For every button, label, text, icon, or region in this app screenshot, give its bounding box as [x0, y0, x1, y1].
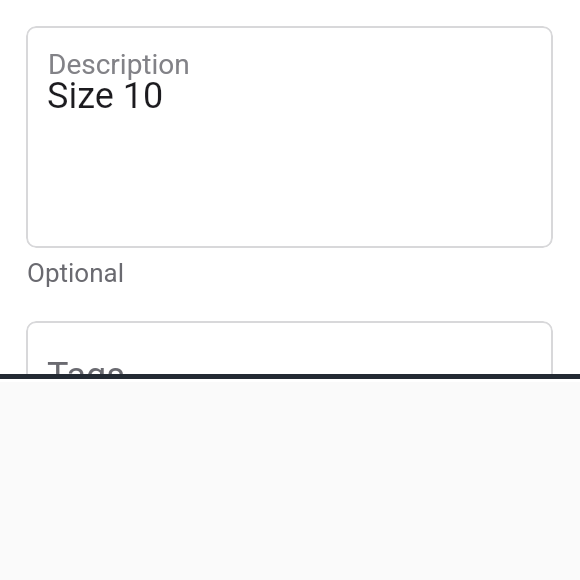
staticText: Optional: [27, 258, 124, 288]
staticText: Tags: [47, 355, 125, 397]
button[interactable]: Tags: [26, 321, 553, 431]
staticText: Size 10: [47, 75, 164, 117]
staticText: Description: [48, 48, 190, 81]
button[interactable]: Description: [26, 26, 553, 248]
